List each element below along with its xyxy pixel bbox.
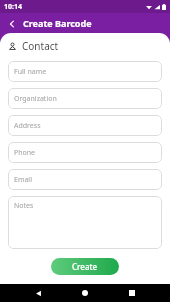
button[interactable]: Back [29, 284, 47, 302]
staticText: Create Barcode [23, 17, 92, 29]
staticText: Phone [14, 148, 36, 158]
staticText: Organization [14, 94, 57, 104]
button[interactable]: Phone [8, 142, 162, 163]
button[interactable]: Email [8, 169, 162, 190]
staticText: Address [14, 121, 41, 131]
staticText: 10:14 [4, 2, 22, 12]
staticText: Contact [22, 39, 59, 53]
staticText: Email [14, 175, 32, 185]
button[interactable]: Recent apps [123, 284, 141, 302]
button[interactable]: Notes [8, 196, 162, 249]
button[interactable]: Back [4, 16, 19, 31]
button[interactable]: Full name [8, 61, 162, 82]
staticText: Create [72, 261, 98, 272]
button[interactable]: Create [51, 258, 119, 275]
button[interactable]: Organization [8, 88, 162, 109]
staticText: Full name [14, 67, 47, 77]
button[interactable]: Address [8, 115, 162, 136]
button[interactable]: Home [76, 284, 94, 302]
staticText: Notes [14, 201, 34, 211]
